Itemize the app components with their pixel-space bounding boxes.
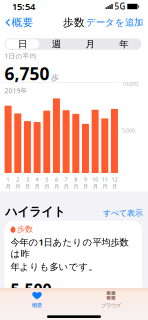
staticText: すべて表示	[103, 208, 143, 218]
staticText: 月	[6, 183, 11, 190]
staticText: 10	[92, 176, 98, 183]
button[interactable]: 月	[73, 39, 107, 49]
staticText: 月	[25, 183, 30, 190]
staticText: 歩数	[63, 16, 85, 29]
button[interactable]: 概要	[0, 291, 74, 311]
staticText: 週	[52, 38, 61, 50]
staticText: 今年の1日あたりの平均歩数は昨	[10, 236, 128, 260]
staticText: 月	[83, 183, 88, 190]
staticText: 歩	[51, 73, 59, 82]
staticText: 月	[112, 183, 117, 190]
button[interactable]: 日	[5, 39, 39, 49]
button[interactable]: すべて表示	[103, 208, 143, 218]
staticText: 2019年	[5, 86, 28, 95]
staticText: 年よりも多いです。	[10, 261, 97, 273]
button[interactable]: ブラウズ	[74, 291, 148, 311]
staticText: 11	[102, 176, 108, 183]
staticText: 5,000	[122, 127, 135, 134]
staticText: 月	[93, 183, 98, 190]
staticText: 5	[45, 176, 48, 183]
staticText: データを追加	[86, 17, 143, 28]
staticText: 月	[85, 38, 94, 50]
staticText: 概要	[11, 16, 33, 29]
staticText: 1	[7, 176, 10, 183]
staticText: ブラウズ	[101, 302, 121, 309]
staticText: 月	[15, 183, 20, 190]
staticText: 8	[74, 176, 77, 183]
staticText: 月	[102, 183, 107, 190]
staticText: 月	[73, 183, 78, 190]
staticText: 1日の平均	[5, 51, 37, 60]
staticText: 概要	[32, 302, 42, 308]
button[interactable]: 歩数	[4, 221, 142, 293]
staticText: 月	[44, 183, 49, 190]
button[interactable]: 週	[39, 39, 73, 49]
staticText: 年	[119, 38, 128, 50]
staticText: 15:54	[12, 0, 35, 13]
staticText: 9	[84, 176, 87, 183]
staticText: 6	[55, 176, 58, 183]
staticText: 4	[36, 176, 39, 183]
button[interactable]: 概要	[2, 13, 36, 31]
staticText: 10,000	[122, 80, 138, 87]
staticText: 3	[26, 176, 29, 183]
staticText: 2	[16, 176, 19, 183]
staticText: 歩/日	[53, 287, 72, 298]
button[interactable]: 年	[107, 39, 141, 49]
staticText: ハイライト	[5, 204, 65, 219]
staticText: 5,500	[10, 279, 51, 300]
staticText: 月	[35, 183, 40, 190]
button[interactable]: データを追加	[83, 14, 146, 31]
staticText: 月	[64, 183, 69, 190]
staticText: 歩数	[17, 224, 33, 234]
staticText: 5G	[114, 1, 125, 12]
staticText: 12	[111, 176, 117, 183]
staticText: 6,750	[5, 62, 50, 85]
staticText: 7	[65, 176, 68, 183]
staticText: 日	[18, 38, 27, 50]
staticText: 月	[54, 183, 59, 190]
